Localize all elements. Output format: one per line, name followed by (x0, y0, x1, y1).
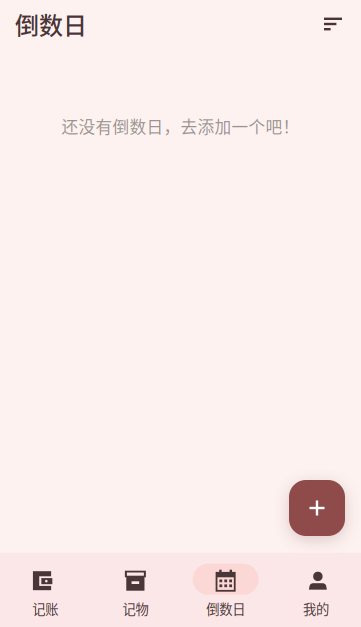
button[interactable]: 倒数日 (180, 564, 271, 618)
button[interactable]: 我的 (271, 564, 361, 618)
staticText: 记物 (122, 599, 148, 618)
button[interactable]: 添加 (289, 480, 345, 536)
button[interactable]: 记账 (0, 564, 90, 618)
staticText: 倒数日 (206, 599, 245, 618)
staticText: 我的 (303, 599, 329, 618)
staticText: 倒数日 (15, 7, 87, 41)
button[interactable]: 记物 (90, 564, 180, 618)
staticText: 还没有倒数日，去添加一个吧！ (61, 114, 299, 138)
staticText: 记账 (32, 599, 58, 618)
button[interactable]: 排序 (310, 8, 342, 40)
